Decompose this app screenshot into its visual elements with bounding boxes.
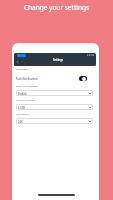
staticText: Push Notifications xyxy=(16,77,38,80)
staticText: Select your language xyxy=(16,85,38,88)
staticText: Change your settings xyxy=(0,3,113,12)
staticText: Currency variation xyxy=(16,99,36,102)
staticText: Settings xyxy=(53,58,64,62)
staticText: Time Format xyxy=(16,113,30,116)
staticText: $ USD xyxy=(18,106,26,109)
button[interactable]: 24H xyxy=(16,118,93,124)
staticText: Notifications xyxy=(16,68,30,71)
button[interactable]: Back xyxy=(15,60,20,64)
button[interactable]: $ USD xyxy=(16,104,93,110)
staticText: 24H xyxy=(18,120,23,123)
button[interactable]: Push Notifications xyxy=(16,74,87,82)
other: Push notifications on xyxy=(79,76,87,81)
button[interactable]: English xyxy=(16,90,93,96)
staticText: English xyxy=(18,92,27,95)
